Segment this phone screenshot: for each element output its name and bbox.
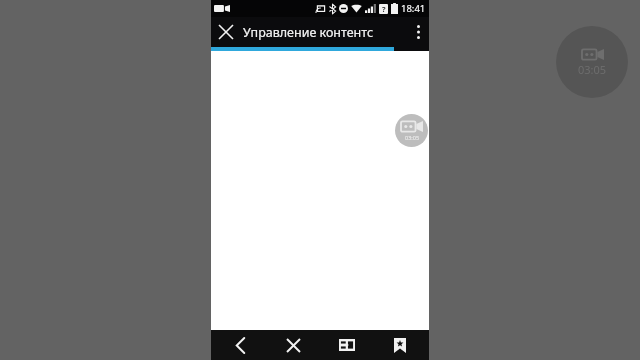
staticText: ? <box>382 4 386 14</box>
button[interactable]: Back <box>216 330 264 360</box>
staticText: 03:05 <box>405 134 420 141</box>
button[interactable]: Recent apps <box>323 330 371 360</box>
button[interactable]: Bookmarks <box>376 330 424 360</box>
staticText: 03:05 <box>578 62 607 77</box>
button[interactable]: Close <box>269 330 317 360</box>
staticText: Управление контентс <box>243 24 405 41</box>
button[interactable]: Close <box>211 17 241 47</box>
button[interactable]: More options <box>407 17 429 47</box>
button[interactable]: Screen recorder <box>395 114 428 147</box>
button[interactable]: Screen recorder <box>556 26 628 98</box>
staticText: 18:41 <box>401 2 426 15</box>
